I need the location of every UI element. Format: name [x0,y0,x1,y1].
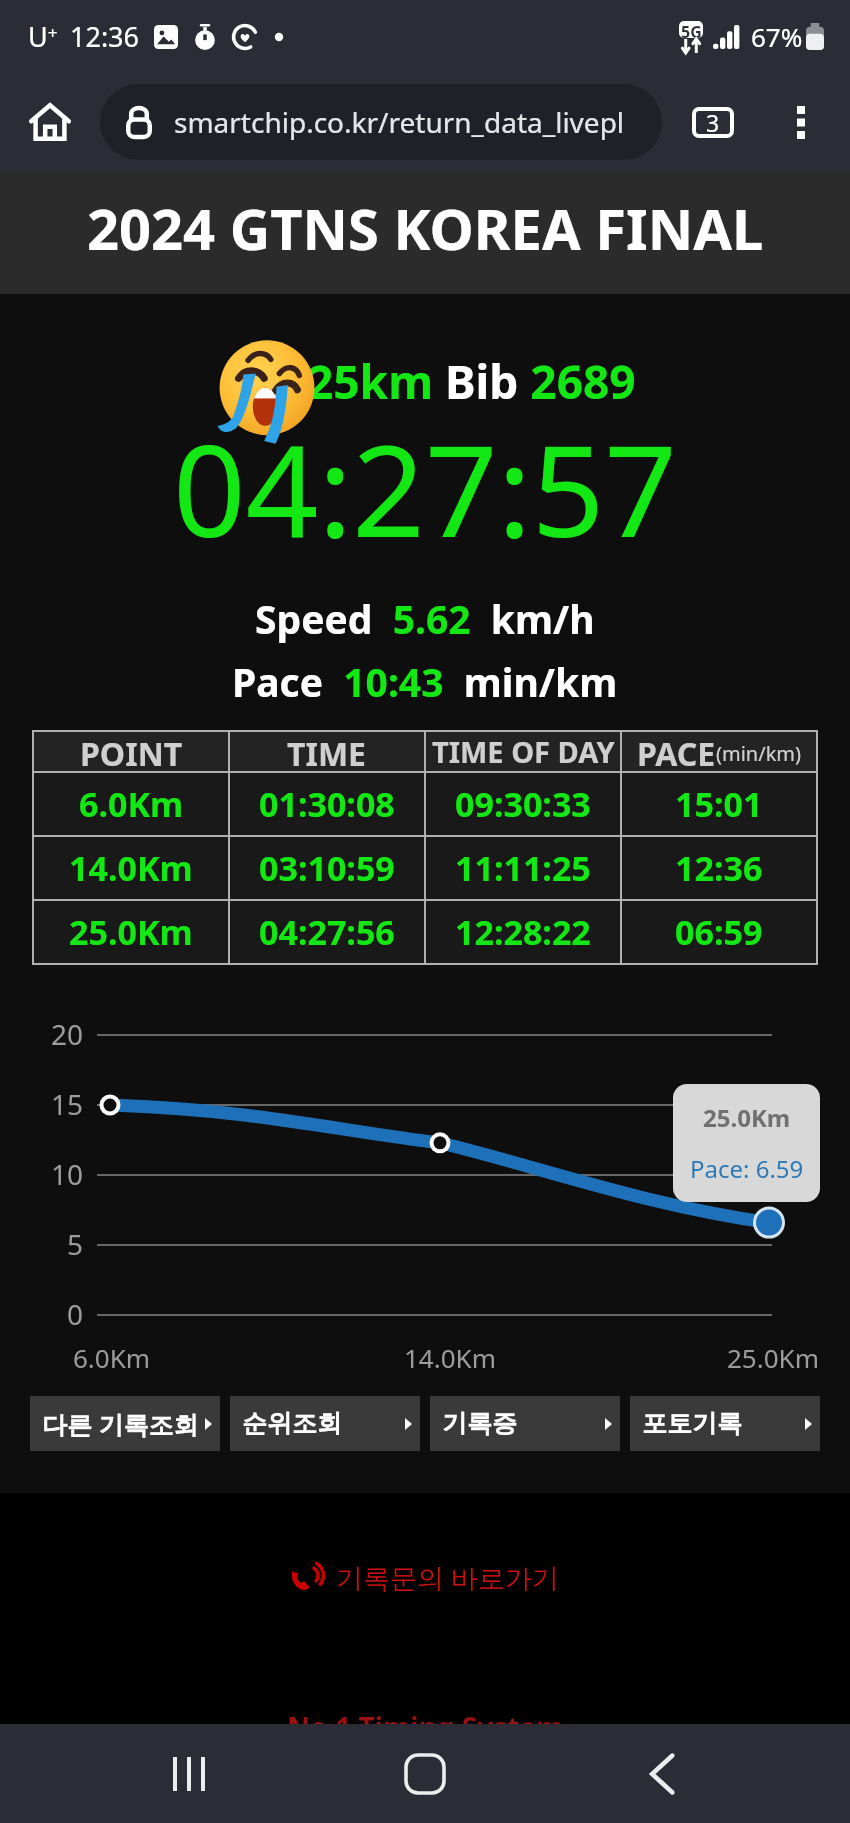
staticText: 5 [67,1225,84,1263]
staticText: 2024 GTNS KOREA FINAL [87,190,764,266]
staticText: Pace 10:43 min/km [232,655,618,708]
button[interactable]: 다른 기록조회 [30,1396,220,1451]
staticText: 20 [51,1015,84,1053]
staticText: 순위조회 [242,1408,342,1439]
staticText: 12:36 [70,18,140,55]
button[interactable]: Recents [141,1726,237,1822]
staticText: 0 [67,1295,84,1333]
staticText: TIME [287,732,367,771]
staticText: 25km Bib 2689 [307,350,636,413]
button[interactable]: More options [760,84,842,160]
staticText: 10 [51,1155,84,1193]
button[interactable]: Home [14,86,86,158]
staticText: 09:30:33 [455,781,591,827]
staticText: 다른 기록조회 [42,1407,199,1441]
staticText: U+ [28,18,58,55]
staticText: 15 [51,1085,84,1123]
staticText: 25.0Km [69,909,193,955]
staticText: 기록문의 바로가기 [336,1559,560,1596]
staticText: 25.0Km [703,1101,791,1134]
staticText: smartchip.co.kr/return_data_livepl [174,103,625,141]
staticText: 12:36 [675,845,763,891]
staticText: POINT [80,732,183,771]
staticText: PACE [637,732,716,771]
staticText: 04:27:56 [259,909,395,955]
staticText: Speed 5.62 km/h [255,592,595,645]
staticText: No.1 Timing System [287,1708,564,1746]
staticText: 15:01 [675,781,763,827]
button[interactable]: 순위조회 [230,1396,420,1451]
staticText: 03:10:59 [259,845,395,891]
staticText: Pace: 6.59 [690,1152,804,1185]
staticText: 25.0Km [727,1340,819,1375]
staticText: 04:27:57 [173,401,677,574]
staticText: TIME OF DAY [432,732,615,771]
staticText: 6.0Km [79,781,184,827]
staticText: 기록증 [442,1408,517,1439]
button[interactable]: Home [377,1726,473,1822]
staticText: 14.0Km [404,1340,496,1375]
staticText: 06:59 [675,909,763,955]
button[interactable]: Tabs [666,84,760,160]
staticText: 5G [681,21,702,38]
button[interactable]: 포토기록 [630,1396,820,1451]
staticText: 11:11:25 [455,845,591,891]
staticText: 01:30:08 [259,781,395,827]
staticText: 포토기록 [642,1408,742,1439]
staticText: 14.0Km [69,845,193,891]
button[interactable]: Back [614,1726,710,1822]
staticText: 67% [751,19,803,54]
button[interactable]: 기록증 [430,1396,620,1451]
staticText: (min/km) [716,740,802,767]
staticText: 12:28:22 [455,909,591,955]
staticText: 3 [706,107,720,138]
button[interactable]: smartchip.co.kr/return_data_livepl [100,84,662,160]
staticText: 6.0Km [73,1340,151,1375]
